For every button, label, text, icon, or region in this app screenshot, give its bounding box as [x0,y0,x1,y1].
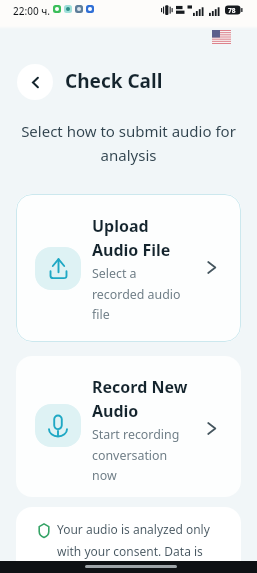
staticText: Check Call [65,68,163,94]
staticText: Select how to submit audio for analysis [18,121,239,165]
staticText: 78 [228,6,236,15]
staticText: Upload Audio File [92,215,171,260]
staticText: Record New Audio [92,376,188,421]
staticText: Your audio is analyzed only with your co… [57,521,217,560]
staticText: 22:00 ч. [13,4,50,18]
button[interactable]: Upload Audio File [16,194,241,342]
button[interactable]: Back [17,64,53,100]
button[interactable]: Record New Audio [16,356,241,497]
staticText: Select a recorded audio file [92,265,181,322]
staticText: Start recording conversation now [92,426,180,483]
